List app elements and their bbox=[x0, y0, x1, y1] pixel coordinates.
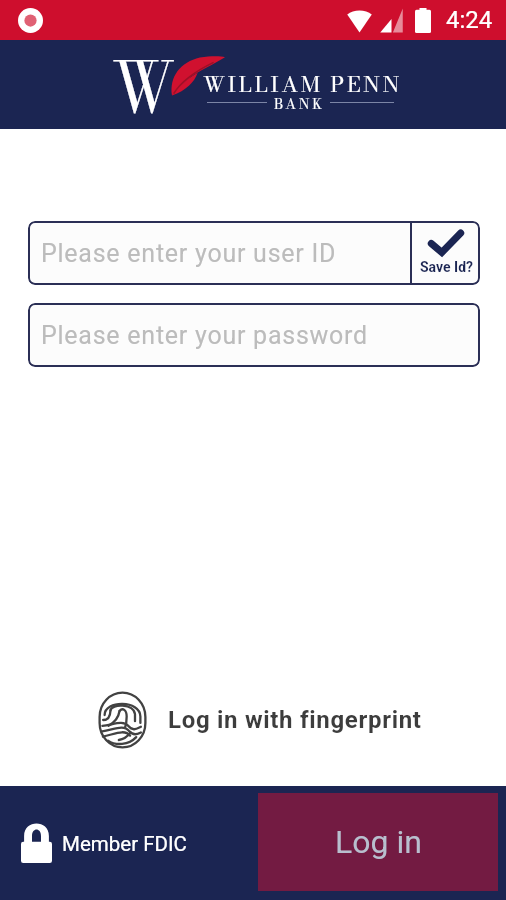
button[interactable]: Secure bbox=[21, 824, 187, 863]
button[interactable]: Please enter your user ID bbox=[28, 221, 410, 285]
staticText: Save Id? bbox=[420, 259, 473, 275]
button[interactable]: Please enter your password bbox=[28, 303, 480, 367]
staticText: Log in with fingerprint bbox=[168, 706, 422, 734]
other: Secure bbox=[21, 824, 52, 863]
button[interactable]: Save Id? bbox=[412, 221, 480, 285]
staticText: Please enter your password bbox=[41, 321, 368, 350]
staticText: Log in bbox=[335, 823, 422, 861]
staticText: Please enter your user ID bbox=[41, 239, 337, 268]
staticText: BANK bbox=[274, 93, 325, 114]
staticText: Member FDIC bbox=[62, 832, 187, 856]
button[interactable]: Log in with fingerprint bbox=[98, 691, 422, 749]
staticText: W bbox=[112, 35, 176, 133]
other: Screen recording bbox=[18, 8, 43, 33]
staticText: 4:24 bbox=[446, 6, 493, 34]
button[interactable]: Log in bbox=[258, 793, 498, 891]
staticText: WILLIAM PENN bbox=[203, 67, 403, 101]
